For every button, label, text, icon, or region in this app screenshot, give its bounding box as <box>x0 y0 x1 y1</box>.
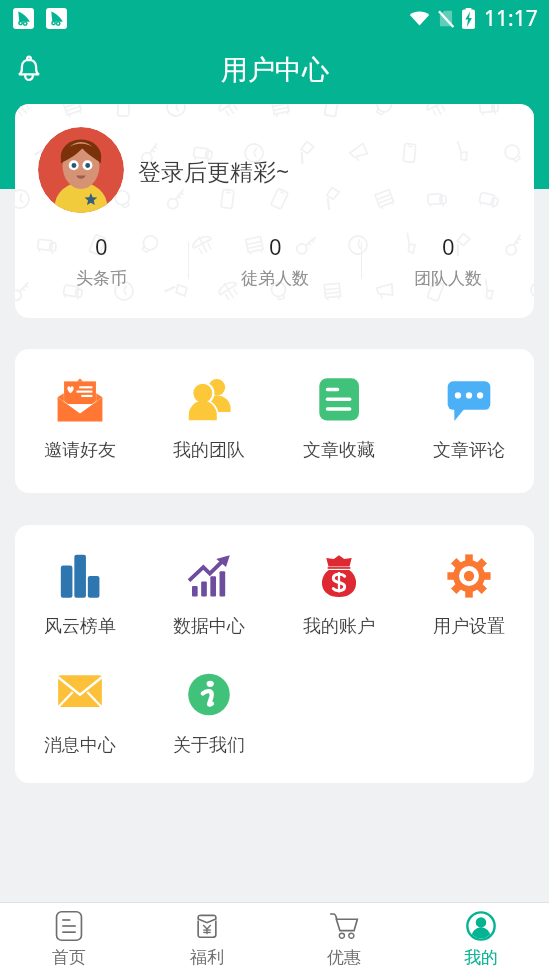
staticText: 0 <box>442 231 455 261</box>
staticText: 消息中心 <box>44 734 116 757</box>
button[interactable]: 文章收藏 <box>274 373 404 462</box>
staticText: 文章评论 <box>433 439 505 462</box>
button[interactable]: 优惠 <box>275 903 412 976</box>
button[interactable]: 关于我们 <box>144 668 274 757</box>
button[interactable]: 福利 <box>138 903 275 976</box>
staticText: 福利 <box>190 947 224 968</box>
staticText: 徒弟人数 <box>241 268 309 289</box>
staticText: 11:17 <box>484 4 538 33</box>
staticText: 登录后更精彩~ <box>138 155 290 186</box>
staticText: 优惠 <box>327 947 361 968</box>
button[interactable]: 用户设置 <box>404 549 534 638</box>
button[interactable]: 首页 <box>0 903 138 976</box>
staticText: 文章收藏 <box>303 439 375 462</box>
button[interactable]: Avatar <box>38 127 124 213</box>
button[interactable]: 我的团队 <box>144 373 274 462</box>
staticText: 0 <box>95 231 108 261</box>
button[interactable]: 数据中心 <box>144 549 274 638</box>
staticText: 我的 <box>464 947 498 968</box>
staticText: 风云榜单 <box>44 615 116 638</box>
staticText: 我的团队 <box>173 439 245 462</box>
button[interactable]: 文章评论 <box>404 373 534 462</box>
staticText: 用户中心 <box>221 53 329 87</box>
staticText: 关于我们 <box>173 734 245 757</box>
staticText: 邀请好友 <box>44 439 116 462</box>
button[interactable]: 消息中心 <box>15 668 144 757</box>
button[interactable]: 我的 <box>412 903 549 976</box>
button[interactable]: 风云榜单 <box>15 549 144 638</box>
button[interactable]: 0 <box>189 231 361 289</box>
button[interactable]: 0 <box>362 231 534 289</box>
staticText: 用户设置 <box>433 615 505 638</box>
staticText: 团队人数 <box>414 268 482 289</box>
staticText: 0 <box>269 231 282 261</box>
button[interactable]: 0 <box>15 231 188 289</box>
button[interactable]: 邀请好友 <box>15 373 144 462</box>
staticText: 首页 <box>52 947 86 968</box>
button[interactable]: Notifications <box>8 49 50 91</box>
button[interactable]: 我的账户 <box>274 549 404 638</box>
staticText: 我的账户 <box>303 615 375 638</box>
staticText: 数据中心 <box>173 615 245 638</box>
staticText: 头条币 <box>76 268 127 289</box>
